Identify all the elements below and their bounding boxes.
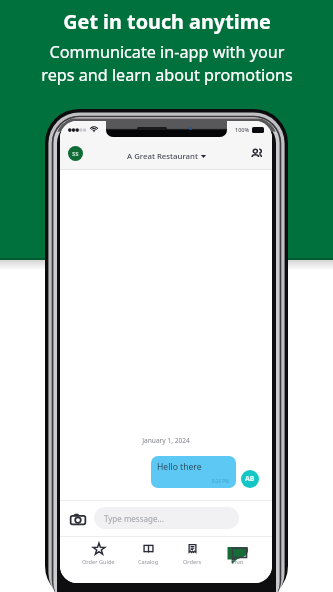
button[interactable]: Chat (225, 537, 250, 583)
staticText: Orders (183, 558, 202, 566)
staticText: Chat (231, 558, 244, 566)
staticText: SS (72, 150, 79, 158)
button[interactable]: Order Guide (82, 537, 115, 583)
staticText: Hello there (157, 461, 202, 473)
staticText: Catalog (138, 558, 159, 566)
staticText: A Great Restaurant (127, 151, 198, 162)
staticText: AB (245, 474, 255, 484)
button[interactable]: Type message... (94, 507, 239, 529)
button[interactable]: Orders (183, 537, 202, 583)
staticText: 100% (235, 126, 250, 133)
button[interactable]: Contacts (250, 147, 263, 160)
button[interactable]: A Great Restaurant (127, 151, 206, 162)
staticText: Get in touch anytime (63, 8, 271, 35)
button[interactable]: Camera (70, 511, 86, 527)
staticText: Communicate in-app with your reps and le… (41, 41, 293, 86)
button[interactable]: Catalog (138, 537, 159, 583)
staticText: Order Guide (82, 558, 115, 566)
staticText: Type message... (104, 513, 164, 524)
button[interactable]: Account (68, 146, 83, 161)
staticText: January 1, 2024 (60, 436, 272, 445)
staticText: 8:20 PM (212, 478, 230, 484)
